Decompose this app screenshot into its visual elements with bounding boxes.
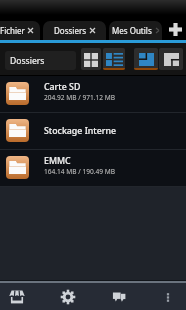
button[interactable]: Grid view [81,48,101,70]
staticText: Carte SD [44,81,81,93]
button[interactable]: Dossiers [43,21,106,40]
button[interactable]: Messages [98,283,140,310]
staticText: Fichier [0,25,25,36]
button[interactable]: Settings [47,283,89,310]
button[interactable]: Market [0,283,38,310]
staticText: Stockage Interne [44,125,116,137]
button[interactable]: New tab [164,18,186,40]
staticText: Mes Outils [112,25,152,36]
staticText: EMMC [44,155,71,167]
button[interactable]: List view [103,48,125,70]
staticText: 164.14 MB / 190.49 MB [44,167,116,176]
button[interactable]: Fichier [0,21,40,40]
button[interactable]: Mes Outils [109,21,162,40]
button[interactable]: Dual pane [159,48,183,70]
button[interactable]: Dossiers [5,51,76,70]
staticText: Dossiers [54,25,87,36]
staticText: 204.92 MB / 971.12 MB [44,93,116,102]
button[interactable]: Stockage Interne [0,113,186,150]
button[interactable]: EMMC [0,150,186,187]
button[interactable]: Single pane [134,48,158,70]
staticText: Dossiers [10,55,45,67]
button[interactable]: More options [147,283,186,310]
button[interactable]: Carte SD [0,76,186,113]
